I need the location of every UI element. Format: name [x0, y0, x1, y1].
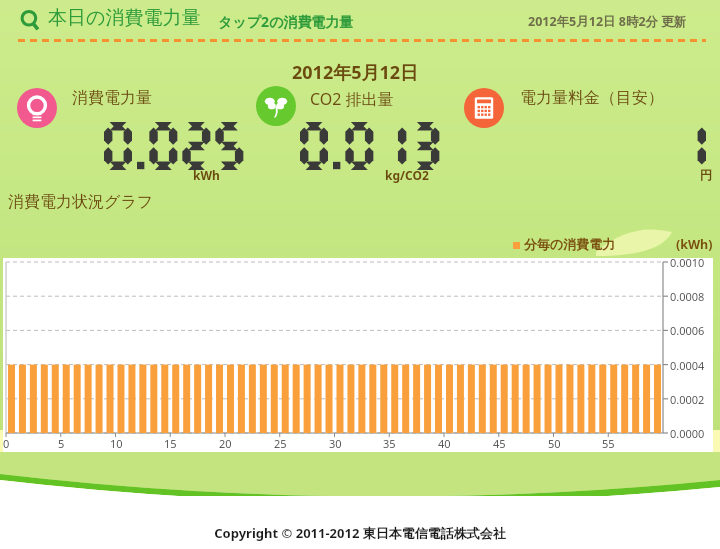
staticText: 0.0004 — [670, 358, 705, 373]
staticText: 15 — [164, 436, 177, 451]
staticText: 0.0008 — [670, 289, 705, 304]
staticText: kg/CO2 — [385, 167, 429, 183]
staticText: 消費電力量 — [72, 88, 152, 108]
button[interactable]: CO2 排出量 — [256, 86, 296, 126]
staticText: 分毎の消費電力 — [524, 236, 616, 252]
button[interactable]: 検索 — [18, 8, 44, 34]
staticText: CO2 排出量 — [310, 88, 394, 110]
staticText: 0.0010 — [670, 255, 705, 270]
staticText: 20 — [219, 436, 232, 451]
staticText: 0 — [3, 436, 10, 451]
staticText: 35 — [383, 436, 396, 451]
staticText: 本日の消費電力量 — [48, 6, 201, 30]
staticText: 円 — [700, 167, 712, 182]
staticText: タップ2の消費電力量 — [218, 12, 354, 31]
staticText: 10 — [110, 436, 123, 451]
button[interactable]: 本日の消費電力量 — [48, 6, 208, 34]
staticText: 30 — [329, 436, 342, 451]
staticText: Copyright © 2011-2012 東日本電信電話株式会社 — [214, 524, 506, 542]
button[interactable]: 消費電力量 — [17, 88, 57, 128]
staticText: 45 — [493, 436, 506, 451]
staticText: 0.0002 — [670, 392, 705, 407]
button[interactable]: 電力量料金 — [464, 88, 504, 128]
staticText: 50 — [548, 436, 561, 451]
staticText: 5 — [58, 436, 65, 451]
staticText: kWh — [193, 167, 220, 183]
staticText: 40 — [438, 436, 451, 451]
staticText: (kWh) — [676, 236, 713, 253]
staticText: 0.0000 — [670, 426, 705, 441]
staticText: 55 — [602, 436, 615, 451]
staticText: 消費電力状況グラフ — [8, 192, 154, 212]
staticText: 2012年5月12日 — [292, 60, 419, 85]
staticText: 電力量料金（目安） — [520, 88, 664, 108]
staticText: 25 — [274, 436, 287, 451]
staticText: 0.0006 — [670, 323, 705, 338]
staticText: 2012年5月12日 8時2分 更新 — [528, 13, 687, 30]
